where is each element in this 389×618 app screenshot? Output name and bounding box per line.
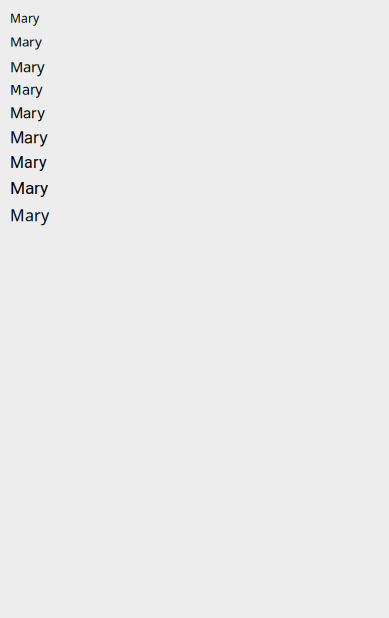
staticText: Mary: [10, 32, 42, 50]
staticText: Mary: [10, 128, 48, 147]
staticText: Mary: [10, 204, 49, 226]
staticText: Mary: [10, 82, 43, 98]
staticText: Mary: [10, 178, 48, 198]
staticText: Mary: [10, 104, 45, 122]
staticText: Mary: [10, 153, 47, 172]
staticText: Mary: [10, 56, 44, 76]
staticText: Mary: [10, 10, 39, 26]
